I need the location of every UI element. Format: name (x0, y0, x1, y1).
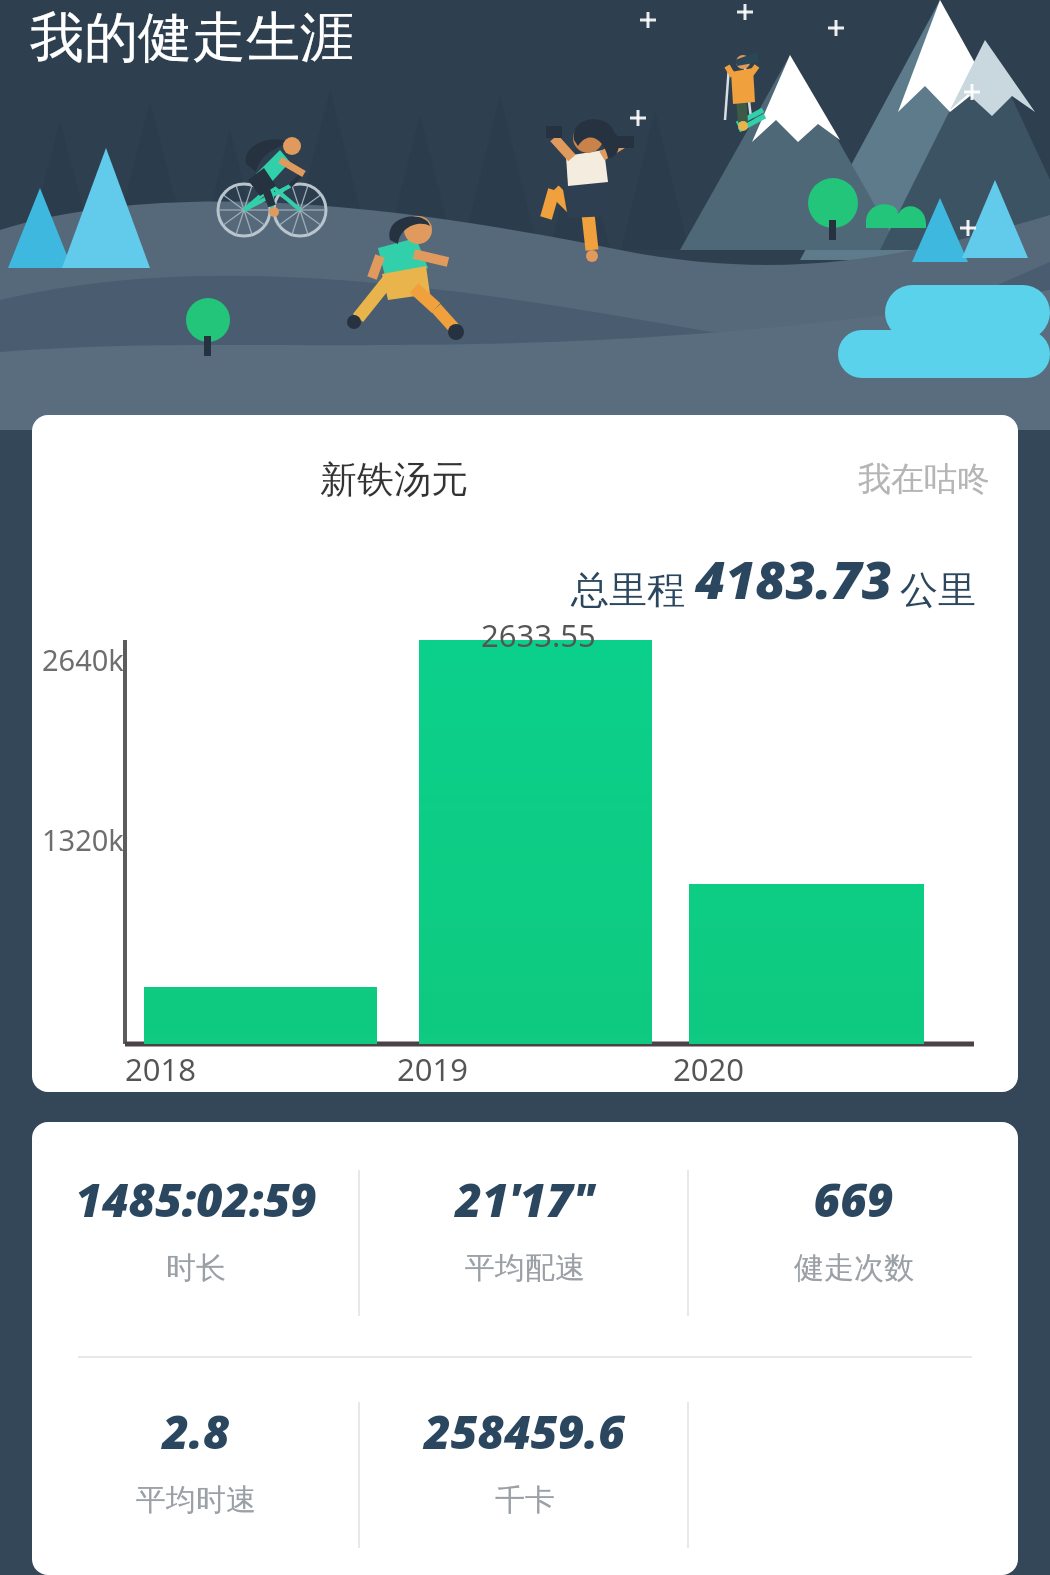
staticText: 21'17" (455, 1168, 594, 1231)
button[interactable]: 新铁汤元 (32, 415, 1018, 1092)
staticText: 2.8 (162, 1400, 230, 1463)
button[interactable]: 2.8 (32, 1400, 360, 1550)
staticText: 我在咕咚 (858, 458, 990, 500)
staticText: 新铁汤元 (320, 456, 468, 503)
staticText: 2018 (125, 1048, 196, 1090)
staticText: 千卡 (495, 1481, 555, 1519)
staticText: 1320k (42, 820, 124, 859)
staticText: 平均时速 (136, 1481, 256, 1519)
button[interactable]: 258459.6 (360, 1400, 689, 1550)
staticText: 平均配速 (465, 1249, 585, 1287)
staticText: 2633.55 (481, 614, 596, 656)
staticText: 2019 (397, 1048, 468, 1090)
staticText: 669 (813, 1168, 894, 1231)
staticText: 公里 (900, 566, 976, 614)
staticText: 1485:02:59 (75, 1168, 317, 1231)
button[interactable]: 1485:02:59 (32, 1168, 360, 1318)
button[interactable]: 21'17" (360, 1168, 689, 1318)
staticText: 2640k (42, 640, 124, 679)
staticText: 时长 (166, 1249, 226, 1287)
staticText: 健走次数 (794, 1249, 914, 1287)
staticText: 258459.6 (424, 1400, 625, 1463)
staticText: 总里程 (571, 566, 685, 614)
staticText: 4183.73 (695, 543, 892, 614)
staticText: 2020 (673, 1048, 744, 1090)
staticText: 我的健走生涯 (30, 4, 354, 72)
button[interactable]: 669 (689, 1168, 1018, 1318)
